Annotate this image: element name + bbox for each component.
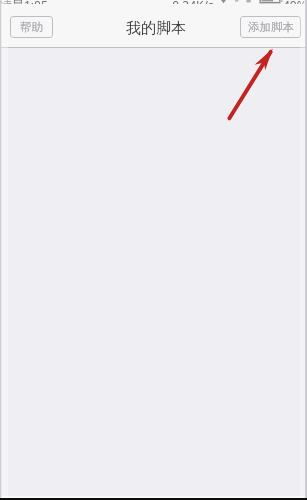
other: Arrow pointing at the add-script button — [0, 48, 307, 496]
staticText: 添加脚本 — [248, 20, 294, 34]
staticText: 帮助 — [20, 20, 43, 34]
staticText: ⋯ 0.24K/s — [154, 0, 214, 4]
staticText: 我的脚本 — [126, 19, 186, 38]
button[interactable]: 添加脚本 — [240, 16, 301, 38]
staticText: 凌晨1:05 — [0, 0, 48, 4]
staticText: 40% — [283, 0, 307, 4]
button[interactable]: 帮助 — [10, 16, 53, 38]
